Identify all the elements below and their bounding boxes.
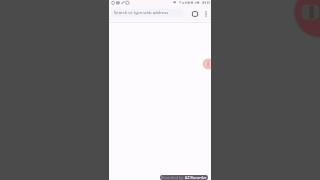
button[interactable]: Tabs (189, 8, 200, 19)
button[interactable]: Search or type web address (111, 9, 183, 17)
button[interactable]: More options (200, 8, 211, 19)
staticText: AZ Recorder (184, 175, 207, 180)
staticText: Recorded by (161, 175, 184, 180)
button[interactable]: Screen recorder (202, 58, 211, 70)
staticText: Search or type web address (114, 10, 169, 16)
